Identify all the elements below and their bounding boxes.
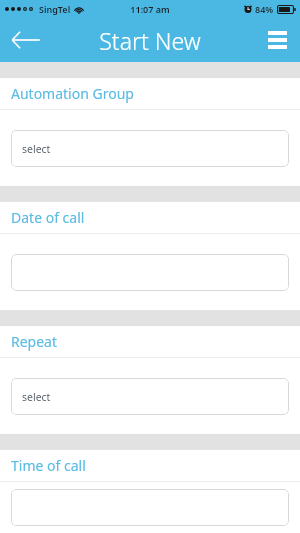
button[interactable]: Menu (254, 18, 300, 62)
staticText: Repeat (11, 332, 58, 351)
staticText: SingTel (39, 3, 71, 15)
button[interactable]: select (11, 130, 289, 167)
staticText: Date of call (11, 208, 85, 227)
button[interactable]: Repeat (0, 326, 300, 357)
staticText: 11:07 am (130, 3, 170, 15)
button[interactable]: Time of call (0, 450, 300, 481)
button[interactable]: Back (0, 18, 52, 62)
button[interactable]: Automation Group (0, 78, 300, 109)
button[interactable]: select (11, 378, 289, 415)
button[interactable] (11, 254, 289, 291)
staticText: Start New (99, 25, 201, 56)
staticText: Automation Group (11, 84, 134, 103)
staticText: select (22, 142, 51, 156)
button[interactable]: Date of call (0, 202, 300, 233)
staticText: Time of call (11, 456, 86, 475)
staticText: select (22, 390, 51, 404)
staticText: 84% (255, 3, 274, 15)
button[interactable] (11, 489, 289, 526)
